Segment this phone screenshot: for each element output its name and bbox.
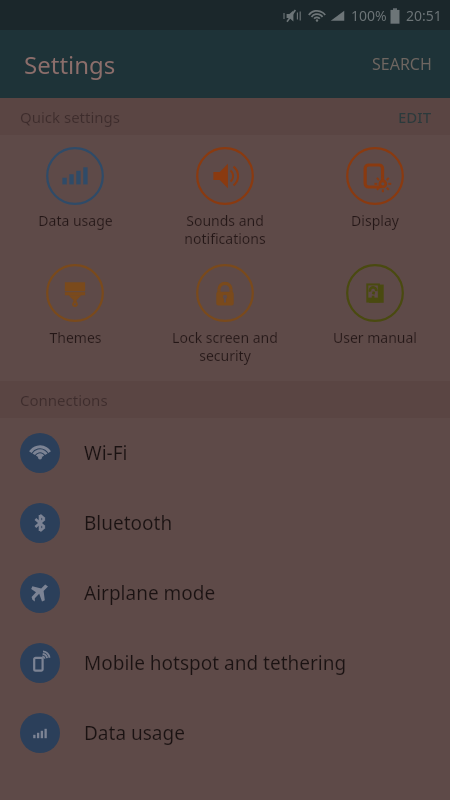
staticText: Airplane mode (84, 580, 216, 606)
staticText: Lock screen and security (172, 328, 278, 365)
button[interactable]: Data usage (0, 145, 150, 232)
button[interactable]: Lock screen and security (150, 262, 300, 367)
button[interactable]: Display (300, 145, 450, 232)
staticText: Connections (20, 390, 108, 410)
staticText: Settings (24, 48, 116, 81)
staticText: Mobile hotspot and tethering (84, 650, 347, 676)
staticText: Bluetooth (84, 510, 173, 536)
staticText: 100% (351, 6, 387, 25)
button[interactable]: SEARCH (354, 39, 450, 89)
staticText: Wi-Fi (84, 440, 128, 466)
staticText: Themes (49, 328, 102, 347)
button[interactable]: EDIT (380, 99, 450, 135)
button[interactable]: Mobile hotspot and tethering (0, 628, 450, 698)
staticText: EDIT (398, 107, 432, 127)
staticText: Data usage (84, 720, 185, 746)
staticText: Display (351, 211, 399, 230)
staticText: Sounds and notifications (184, 211, 266, 248)
button[interactable]: Themes (0, 262, 150, 349)
button[interactable]: Airplane mode (0, 558, 450, 628)
button[interactable]: User manual (300, 262, 450, 349)
button[interactable]: Sounds and notifications (150, 145, 300, 250)
button[interactable]: Wi-Fi (0, 418, 450, 488)
button[interactable]: Bluetooth (0, 488, 450, 558)
staticText: Data usage (38, 211, 113, 230)
staticText: 20:51 (406, 6, 442, 25)
staticText: Quick settings (20, 107, 120, 127)
staticText: User manual (333, 328, 417, 347)
staticText: SEARCH (372, 53, 432, 75)
button[interactable]: Data usage (0, 698, 450, 768)
